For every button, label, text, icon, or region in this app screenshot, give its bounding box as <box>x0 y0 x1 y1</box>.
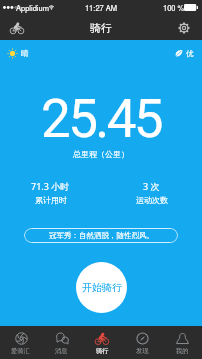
button[interactable]: 消息 <box>41 326 82 359</box>
staticText: 运动次数 <box>136 195 168 205</box>
staticText: 消息 <box>55 347 68 355</box>
button[interactable]: 我的 <box>162 326 202 359</box>
staticText: 冠军秀：自然洒脱，随性烈风。 <box>49 231 154 240</box>
button[interactable]: 冠军秀：自然洒脱，随性烈风。 <box>24 228 178 243</box>
staticText: 发现 <box>136 347 149 355</box>
button[interactable]: Cycling <box>6 17 28 39</box>
button[interactable]: 骑行 <box>82 326 122 359</box>
staticText: 100 % <box>163 2 185 13</box>
button[interactable]: 发现 <box>122 326 162 359</box>
button[interactable]: Settings <box>174 18 194 38</box>
staticText: 优 <box>186 49 194 58</box>
button[interactable]: 开始骑行 <box>76 262 127 313</box>
button[interactable]: 爱骑汇 <box>0 326 41 359</box>
staticText: Applidium <box>16 2 49 13</box>
staticText: 11:27 AM <box>0 2 202 13</box>
staticText: 总里程（公里） <box>0 149 202 159</box>
staticText: 骑行 <box>96 347 109 355</box>
staticText: 爱骑汇 <box>11 347 30 355</box>
button[interactable]: 优 <box>174 49 194 58</box>
staticText: 3 次 <box>143 180 160 192</box>
button[interactable]: 3 次 <box>101 180 202 205</box>
staticText: 晴 <box>21 49 29 58</box>
staticText: 71.3 小时 <box>31 180 70 192</box>
staticText: 累计用时 <box>35 195 67 205</box>
staticText: 25.45 <box>0 88 202 150</box>
button[interactable]: 71.3 小时 <box>0 180 101 205</box>
staticText: 骑行 <box>90 21 112 35</box>
button[interactable]: 晴 <box>7 48 29 59</box>
staticText: 我的 <box>176 347 189 355</box>
staticText: 开始骑行 <box>82 281 122 294</box>
